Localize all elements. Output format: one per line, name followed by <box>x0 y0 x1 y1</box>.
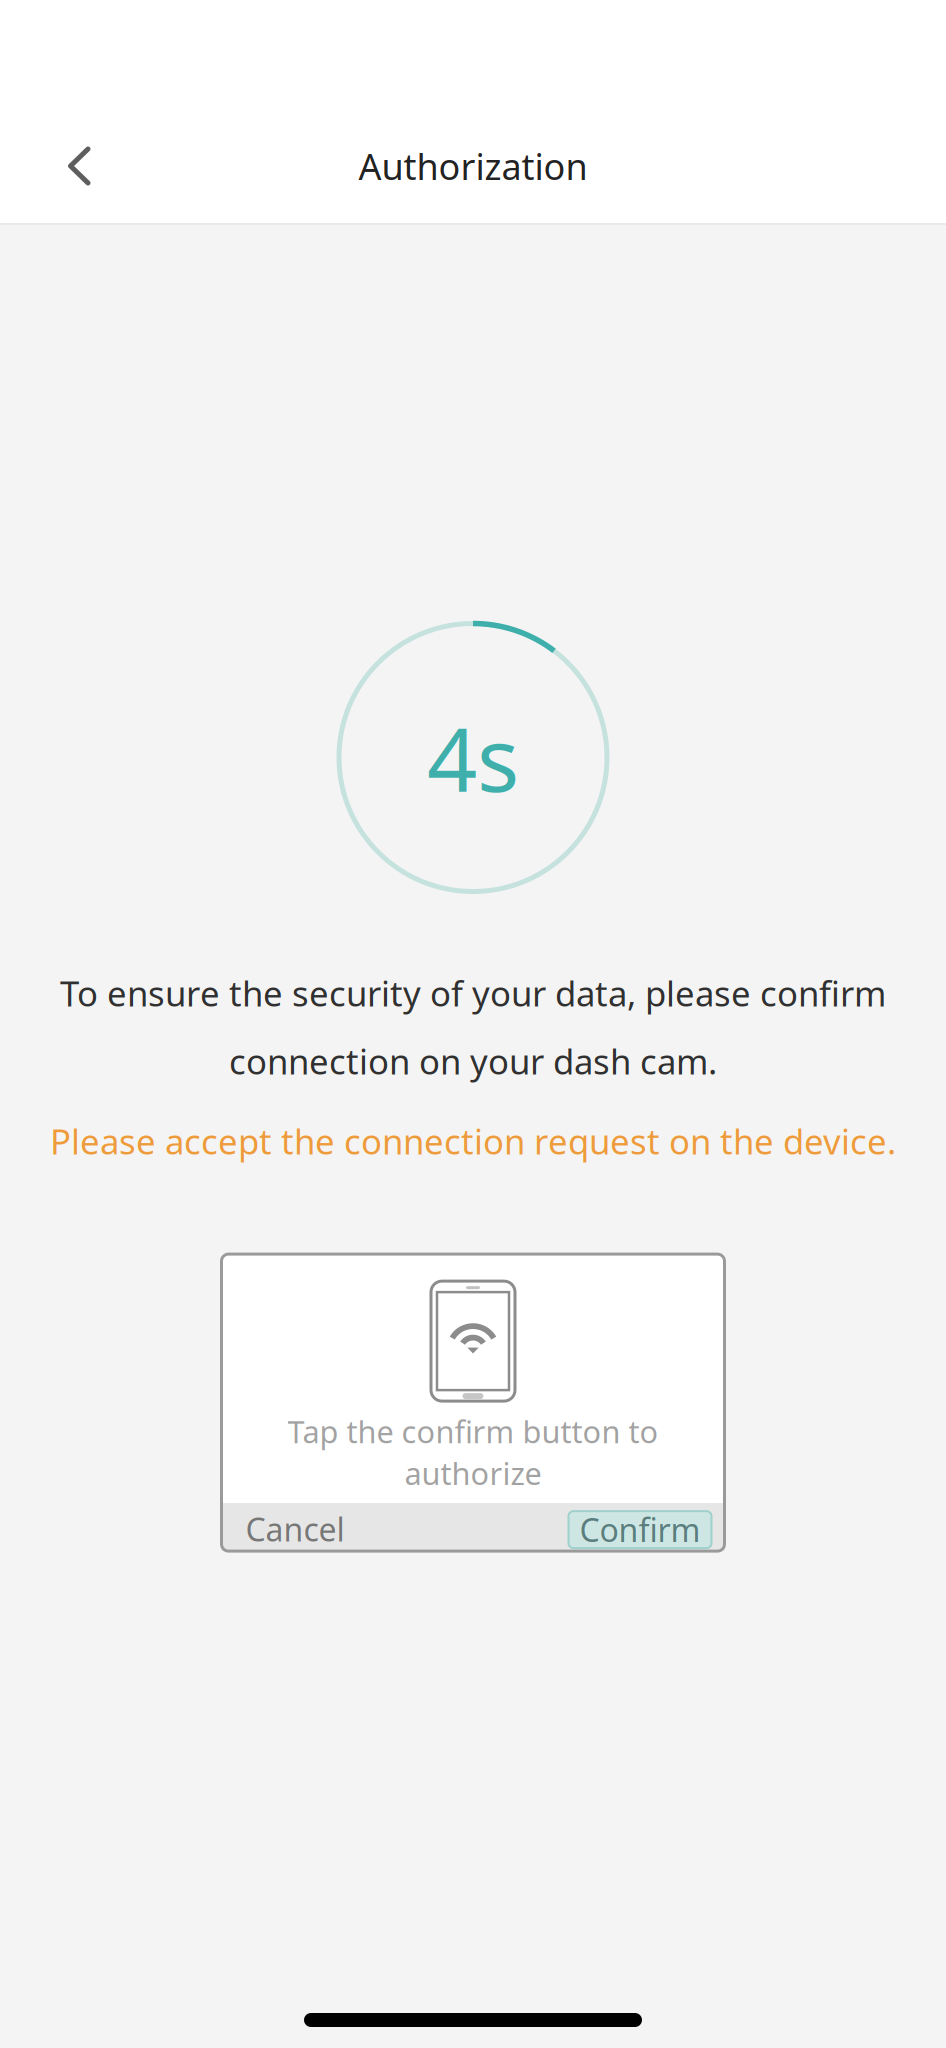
staticText: Authorization <box>358 142 587 190</box>
button[interactable]: Back <box>0 124 158 208</box>
staticText: authorize <box>404 1453 541 1493</box>
staticText: Confirm <box>579 1508 700 1551</box>
button[interactable]: Cancel <box>221 1497 344 1557</box>
staticText: Tap the confirm button to <box>287 1411 658 1452</box>
staticText: 4s <box>427 699 519 816</box>
button[interactable]: Confirm <box>568 1506 724 1548</box>
staticText: connection on your dash cam. <box>229 1038 717 1084</box>
staticText: Cancel <box>245 1508 344 1550</box>
staticText: To ensure the security of your data, ple… <box>60 970 886 1016</box>
staticText: Please accept the connection request on … <box>50 1118 896 1164</box>
